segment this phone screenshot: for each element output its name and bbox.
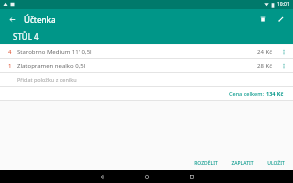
staticText: 134 Kč <box>266 90 284 97</box>
staticText: Starobrno Medium 11' 0,5l <box>17 48 257 56</box>
button[interactable]: Delete <box>256 12 270 26</box>
staticText: Cena celkem: <box>229 90 266 97</box>
button[interactable]: 4 <box>0 45 293 58</box>
button[interactable]: Edit <box>274 12 288 26</box>
staticText: Zlatopramen nealko 0,5l <box>17 62 257 70</box>
button[interactable]: Home <box>141 171 152 182</box>
button[interactable]: More options <box>279 47 288 56</box>
staticText: ULOŽIT <box>267 160 285 167</box>
staticText: STŮL 4 <box>13 31 39 42</box>
button[interactable]: ULOŽIT <box>264 158 288 169</box>
button[interactable]: More options <box>279 61 288 70</box>
button[interactable]: 1 <box>0 59 293 72</box>
staticText: 28 Kč <box>257 62 273 70</box>
button[interactable]: Back <box>96 171 107 182</box>
staticText: 10:01 <box>277 1 290 8</box>
button[interactable]: Recent apps <box>186 171 197 182</box>
button[interactable]: ZAPLATIT <box>228 158 257 169</box>
staticText: 4 <box>8 48 12 56</box>
staticText: 24 Kč <box>257 48 273 56</box>
staticText: 1 <box>8 62 12 70</box>
staticText: Účtenka <box>24 14 56 25</box>
staticText: ROZDĚLIT <box>194 160 218 167</box>
button[interactable]: Back <box>5 12 19 26</box>
button[interactable]: Přidat položku z ceníku <box>0 73 293 86</box>
staticText: ZAPLATIT <box>231 160 254 167</box>
staticText: Přidat položku z ceníku <box>17 76 77 83</box>
button[interactable]: ROZDĚLIT <box>191 158 221 169</box>
